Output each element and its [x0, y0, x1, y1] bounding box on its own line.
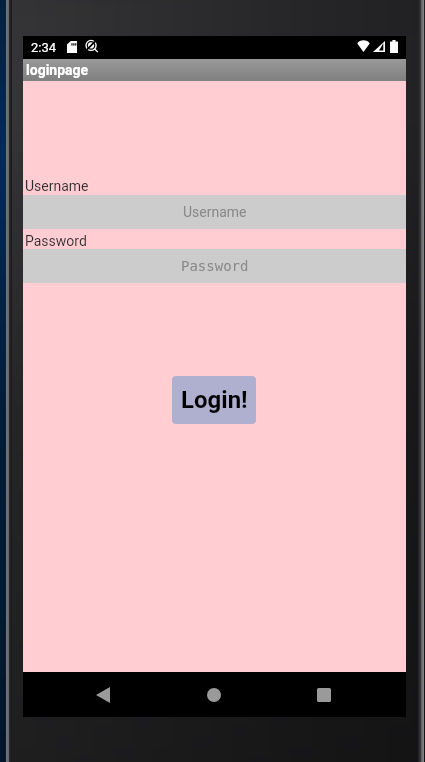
staticText: Login! [181, 386, 248, 414]
button[interactable]: Back [73, 672, 133, 717]
button[interactable]: Username [23, 195, 406, 229]
button[interactable]: Password [23, 249, 406, 283]
staticText: Username [183, 204, 247, 220]
button[interactable]: Login! [172, 376, 256, 424]
button[interactable]: Home [184, 672, 244, 717]
staticText: Password [25, 233, 87, 249]
staticText: Password [181, 258, 249, 274]
staticText: Username [25, 178, 89, 194]
button[interactable]: Recent apps [294, 672, 354, 717]
staticText: 2:34 [31, 40, 57, 55]
staticText: loginpage [26, 62, 89, 78]
